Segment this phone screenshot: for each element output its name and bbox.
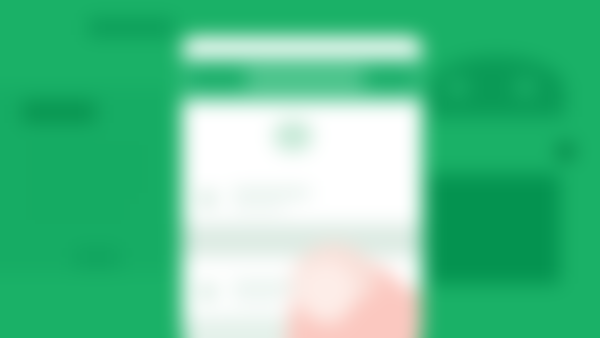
button[interactable] [182,317,422,338]
button[interactable] [182,277,422,307]
button[interactable] [182,184,422,214]
other: More options [364,68,416,90]
button[interactable]: Menu [182,57,422,101]
other: Menu [188,68,246,90]
button[interactable] [182,224,422,257]
